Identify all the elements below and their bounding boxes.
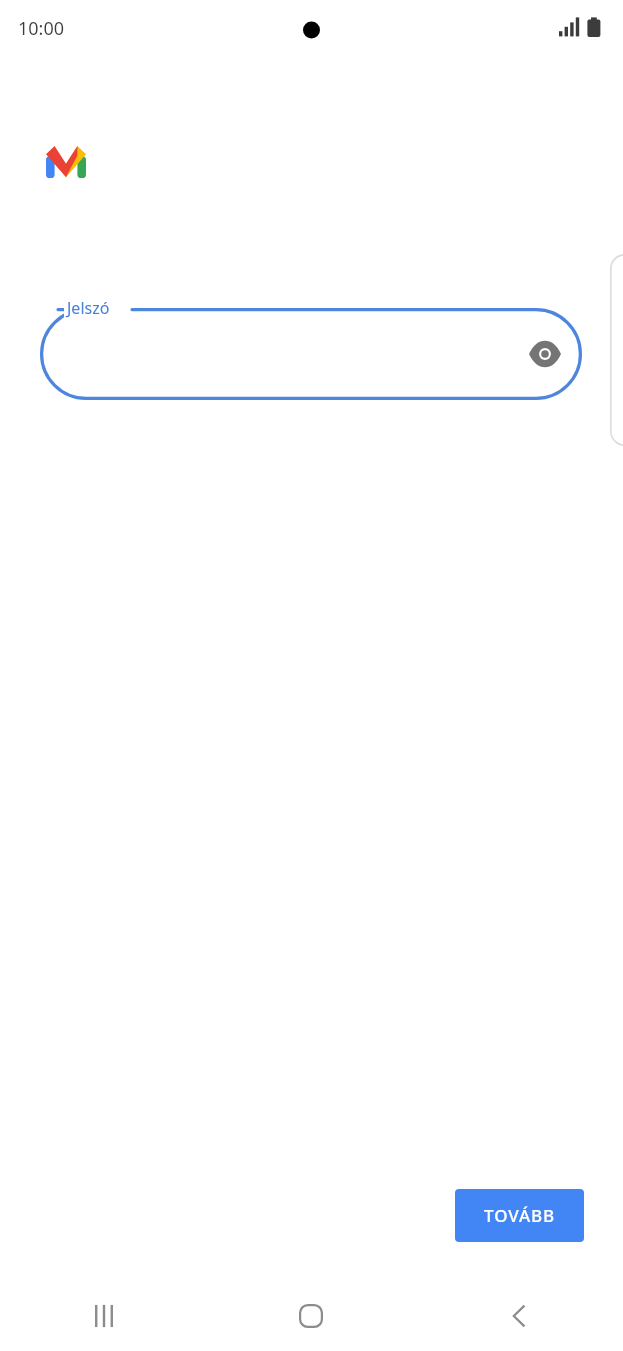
staticText: Jelszó bbox=[67, 297, 110, 319]
button[interactable]: TOVÁBB bbox=[455, 1189, 584, 1242]
button[interactable]: Home bbox=[207, 1280, 415, 1351]
button[interactable]: Recent apps bbox=[0, 1280, 207, 1351]
button[interactable]: Show password bbox=[521, 330, 569, 378]
button[interactable]: Back bbox=[415, 1280, 623, 1351]
staticText: 10:00 bbox=[18, 16, 65, 41]
button[interactable]: Show password bbox=[40, 308, 582, 400]
staticText: TOVÁBB bbox=[484, 1204, 555, 1227]
